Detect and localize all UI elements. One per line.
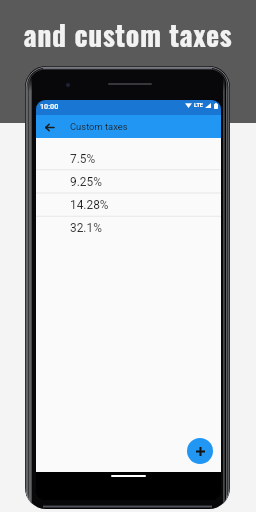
staticText: 9.25% (70, 175, 102, 189)
button[interactable]: Back (40, 118, 58, 136)
staticText: 7.5% (70, 152, 96, 166)
staticText: 32.1% (70, 221, 102, 235)
staticText: 10:00 (40, 102, 59, 110)
staticText: LTE (194, 102, 204, 109)
button[interactable]: 7.5% (36, 147, 221, 170)
staticText: and custom taxes (0, 14, 256, 55)
button[interactable]: 14.28% (36, 193, 221, 216)
staticText: 14.28% (70, 198, 109, 212)
staticText: Custom taxes (70, 121, 128, 132)
button[interactable]: 32.1% (36, 216, 221, 239)
button[interactable]: 9.25% (36, 170, 221, 193)
button[interactable]: Add (187, 438, 213, 464)
